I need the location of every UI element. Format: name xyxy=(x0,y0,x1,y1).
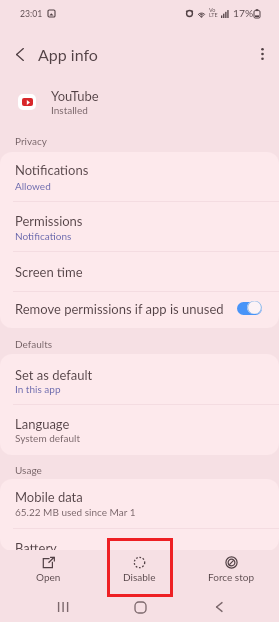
staticText: Force stop xyxy=(208,571,255,583)
staticText: Disable xyxy=(123,571,156,583)
staticText: Remove permissions if app is unused xyxy=(15,301,224,317)
button[interactable]: Open xyxy=(8,551,88,596)
staticText: Open xyxy=(36,571,61,583)
staticText: Vo xyxy=(209,7,216,14)
staticText: System default xyxy=(15,432,80,444)
button[interactable]: Language xyxy=(0,406,279,456)
staticText: Usage xyxy=(15,464,42,476)
staticText: Defaults xyxy=(15,338,53,350)
staticText: Installed xyxy=(51,104,88,116)
staticText: 23:01 xyxy=(20,8,43,18)
staticText: 17% xyxy=(233,7,254,19)
button[interactable]: Remove permissions if app is unused xyxy=(0,293,279,328)
button[interactable]: Home xyxy=(116,596,164,622)
button[interactable]: Screen time xyxy=(0,253,279,293)
button[interactable]: Permissions xyxy=(0,203,279,253)
button[interactable]: Battery xyxy=(0,530,279,551)
staticText: Screen time xyxy=(15,264,83,280)
button[interactable]: Navigate up xyxy=(0,32,40,76)
staticText: Permissions xyxy=(15,213,83,229)
button[interactable]: Recent apps xyxy=(38,596,86,622)
staticText: 65.22 MB used since Mar 1 xyxy=(15,506,136,518)
button[interactable]: More options xyxy=(245,32,279,76)
staticText: App info xyxy=(38,45,98,64)
button[interactable]: Back xyxy=(195,596,243,622)
staticText: Battery xyxy=(15,540,57,556)
staticText: Privacy xyxy=(15,135,47,147)
button[interactable]: Notifications xyxy=(0,152,279,203)
staticText: Mobile data xyxy=(15,489,83,505)
button[interactable]: Mobile data xyxy=(0,479,279,529)
staticText: Allowed xyxy=(15,180,51,192)
staticText: Notifications xyxy=(15,230,72,242)
button[interactable]: YouTube xyxy=(0,78,279,124)
staticText: YouTube xyxy=(51,88,99,104)
staticText: Set as default xyxy=(15,367,93,383)
staticText: Language xyxy=(15,416,70,432)
staticText: Notifications xyxy=(15,162,89,178)
staticText: In this app xyxy=(15,383,61,395)
button[interactable]: Disable xyxy=(99,551,179,596)
button[interactable]: Force stop xyxy=(191,551,271,596)
staticText: LTE xyxy=(209,12,218,19)
button[interactable]: Set as default xyxy=(0,354,279,406)
